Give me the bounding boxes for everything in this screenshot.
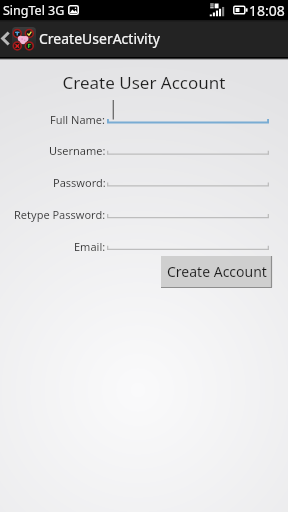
staticText: Password: [53,175,106,190]
button[interactable]: Navigate up [0,20,36,57]
button[interactable]: Username: [107,134,269,156]
staticText: 18:08 [249,1,285,20]
button[interactable]: Email: [107,229,269,251]
staticText: Retype Password: [14,207,106,222]
button[interactable]: Full Name: [107,103,269,125]
staticText: Full Name: [50,112,106,127]
button[interactable]: Create Account [161,256,272,287]
staticText: CreateUserActivity [39,29,160,48]
staticText: Username: [49,143,106,158]
staticText: Create Account [167,262,267,281]
staticText: Create User Account [0,71,288,94]
button[interactable]: Password: [107,166,269,188]
button[interactable]: Retype Password: [107,198,269,220]
staticText: SingTel 3G [3,2,65,19]
staticText: Email: [74,239,106,254]
